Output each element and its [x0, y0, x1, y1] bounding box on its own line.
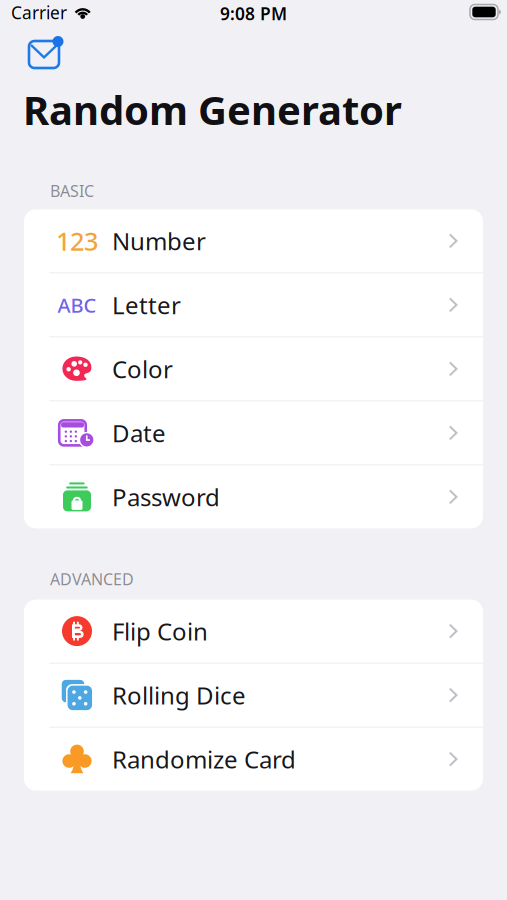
button[interactable]: Rolling Dice: [24, 664, 483, 728]
button[interactable]: Flip Coin: [24, 600, 483, 664]
button[interactable]: Password: [24, 465, 483, 528]
button[interactable]: Randomize Card: [24, 728, 483, 791]
staticText: Color: [112, 353, 173, 385]
staticText: ABC: [57, 292, 96, 318]
staticText: Date: [112, 417, 166, 449]
staticText: Randomize Card: [112, 743, 296, 775]
staticText: BASIC: [50, 180, 94, 201]
staticText: 123: [56, 224, 98, 258]
staticText: Password: [112, 481, 220, 513]
staticText: Carrier: [11, 1, 67, 24]
staticText: ADVANCED: [50, 568, 134, 590]
staticText: 9:08 PM: [220, 2, 287, 25]
staticText: Rolling Dice: [112, 679, 246, 711]
button[interactable]: Color: [24, 337, 483, 401]
button[interactable]: Date: [24, 401, 483, 465]
button[interactable]: 123: [24, 209, 483, 273]
staticText: Random Generator: [23, 83, 402, 136]
staticText: Number: [112, 225, 206, 257]
staticText: Flip Coin: [112, 615, 208, 647]
staticText: Letter: [112, 289, 181, 321]
button[interactable]: ABC: [24, 273, 483, 337]
button[interactable]: Mail: [0, 30, 70, 73]
